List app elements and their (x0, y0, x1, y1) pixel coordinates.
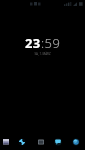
button[interactable]: All apps (38, 139, 44, 145)
staticText: SA, 1. MÄRZ (34, 52, 51, 56)
button[interactable]: Phone (19, 139, 25, 145)
button[interactable]: Gallery (3, 139, 9, 145)
button[interactable]: Browser (73, 139, 79, 145)
staticText: 23 (25, 34, 41, 52)
button[interactable]: Messaging (55, 139, 61, 145)
staticText: :59 (41, 34, 61, 52)
button[interactable]: 23 (0, 33, 85, 57)
